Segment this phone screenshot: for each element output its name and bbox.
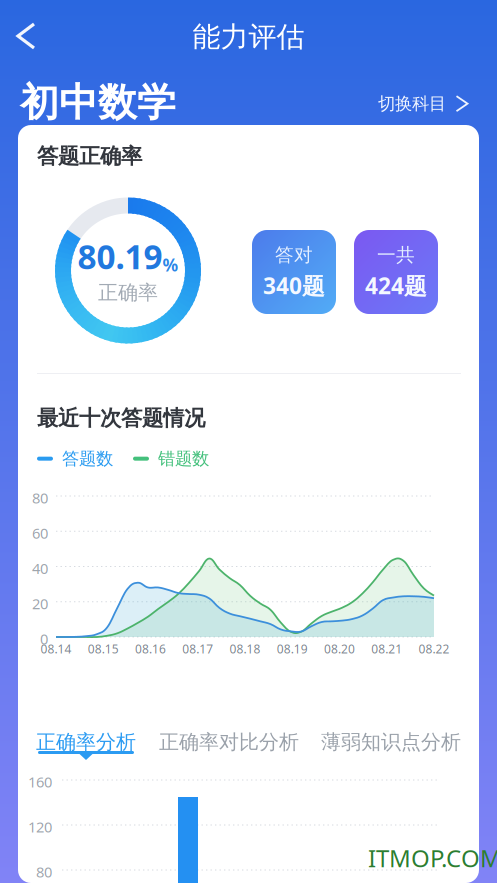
staticText: 薄弱知识点分析	[321, 730, 461, 754]
staticText: 20	[32, 594, 48, 613]
staticText: 08.16	[135, 641, 166, 657]
staticText: 答题正确率	[37, 143, 142, 169]
button[interactable]: 薄弱知识点分析	[317, 730, 465, 754]
button[interactable]: 正确率对比分析	[155, 730, 303, 754]
staticText: 160	[28, 772, 52, 791]
button[interactable]: Back	[0, 0, 56, 60]
staticText: 08.14	[40, 641, 71, 657]
staticText: 424题	[365, 270, 427, 300]
staticText: 答对	[275, 243, 313, 266]
button[interactable]: 答对	[252, 230, 336, 314]
staticText: 08.19	[277, 641, 308, 657]
staticText: 08.20	[324, 641, 355, 657]
staticText: 0	[40, 629, 48, 648]
staticText: 08.18	[229, 641, 260, 657]
staticText: 正确率	[98, 280, 158, 305]
staticText: 错题数	[158, 448, 209, 469]
staticText: 120	[28, 817, 52, 836]
button[interactable]: 正确率分析	[34, 730, 138, 754]
staticText: 答题数	[62, 448, 113, 469]
staticText: 80	[36, 862, 52, 881]
staticText: 正确率对比分析	[159, 730, 299, 754]
staticText: 初中数学	[20, 79, 176, 126]
staticText: 08.21	[371, 641, 402, 657]
button[interactable]: 切换科目	[366, 83, 482, 124]
staticText: 40	[32, 558, 48, 578]
staticText: 最近十次答题情况	[37, 405, 205, 431]
staticText: 80.19	[77, 234, 162, 278]
staticText: 08.22	[418, 641, 449, 657]
staticText: ITMOP.COM	[368, 842, 497, 874]
button[interactable]: 一共	[354, 230, 438, 314]
staticText: 60	[32, 523, 48, 543]
staticText: 切换科目	[378, 93, 446, 114]
staticText: 08.17	[182, 641, 213, 657]
staticText: 正确率分析	[36, 730, 136, 754]
staticText: %	[162, 253, 178, 276]
staticText: 340题	[263, 270, 325, 300]
staticText: 80	[32, 488, 48, 507]
staticText: 08.15	[88, 641, 119, 657]
staticText: 一共	[377, 243, 415, 266]
staticText: 能力评估	[192, 20, 304, 54]
